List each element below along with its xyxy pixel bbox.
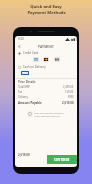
staticText: Credit Card	[23, 51, 39, 55]
button[interactable]: Credit Card	[18, 51, 74, 55]
staticText: Safe and Secure Payments.	[34, 111, 65, 114]
staticText: Cash on Delivery	[23, 65, 46, 69]
staticText: 9:30	[18, 37, 24, 41]
staticText: 2,499.00	[63, 85, 74, 89]
staticText: 2,619.00	[18, 153, 30, 157]
button[interactable]: Back	[16, 43, 22, 49]
staticText: FREE	[68, 95, 74, 99]
staticText: Amount Payable	[18, 101, 42, 105]
staticText: 120.00	[65, 90, 74, 94]
staticText: Delivery	[18, 95, 28, 99]
staticText: Payment Methods	[27, 10, 66, 16]
staticText: CONTINUE	[54, 158, 70, 162]
staticText: Price Details	[18, 80, 36, 84]
staticText: Tax	[18, 90, 23, 94]
button[interactable]: CONTINUE	[47, 155, 77, 164]
staticText: 100% Secured Features.	[34, 114, 61, 117]
staticText: Quick and Easy	[30, 4, 62, 10]
staticText: 2,619.00	[62, 101, 74, 105]
staticText: Total MRP	[18, 85, 31, 89]
button[interactable]: Cash on Delivery	[18, 65, 74, 69]
staticText: PAYMENT	[38, 44, 55, 48]
